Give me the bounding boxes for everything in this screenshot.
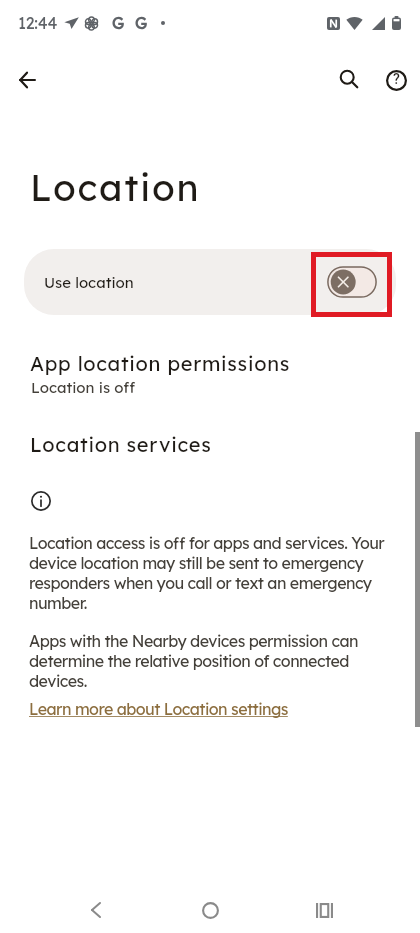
staticText: App location permissions: [30, 351, 291, 376]
button[interactable]: Recent apps: [299, 885, 349, 933]
staticText: Use location: [44, 273, 134, 292]
staticText: G: [135, 13, 148, 33]
staticText: Apps with the Nearby devices permission …: [29, 631, 358, 691]
button[interactable]: App location permissions: [0, 351, 420, 397]
button[interactable]: Back: [71, 885, 121, 933]
staticText: Location access is off for apps and serv…: [29, 533, 385, 613]
button[interactable]: Home: [185, 885, 235, 933]
staticText: Learn more about Location settings: [29, 699, 288, 719]
button[interactable]: Help: [372, 56, 420, 104]
button[interactable]: Search settings: [325, 55, 373, 103]
staticText: Location services: [30, 432, 212, 457]
staticText: ?: [393, 71, 400, 87]
staticText: G: [112, 13, 125, 33]
button[interactable]: Use location: [24, 249, 396, 315]
staticText: Location: [30, 164, 201, 210]
staticText: Location is off: [31, 378, 135, 397]
staticText: 12:44: [18, 13, 58, 33]
button[interactable]: Use location toggle, off: [327, 266, 377, 298]
button[interactable]: Navigate up: [3, 56, 51, 104]
button[interactable]: Learn more about Location settings: [29, 699, 288, 719]
